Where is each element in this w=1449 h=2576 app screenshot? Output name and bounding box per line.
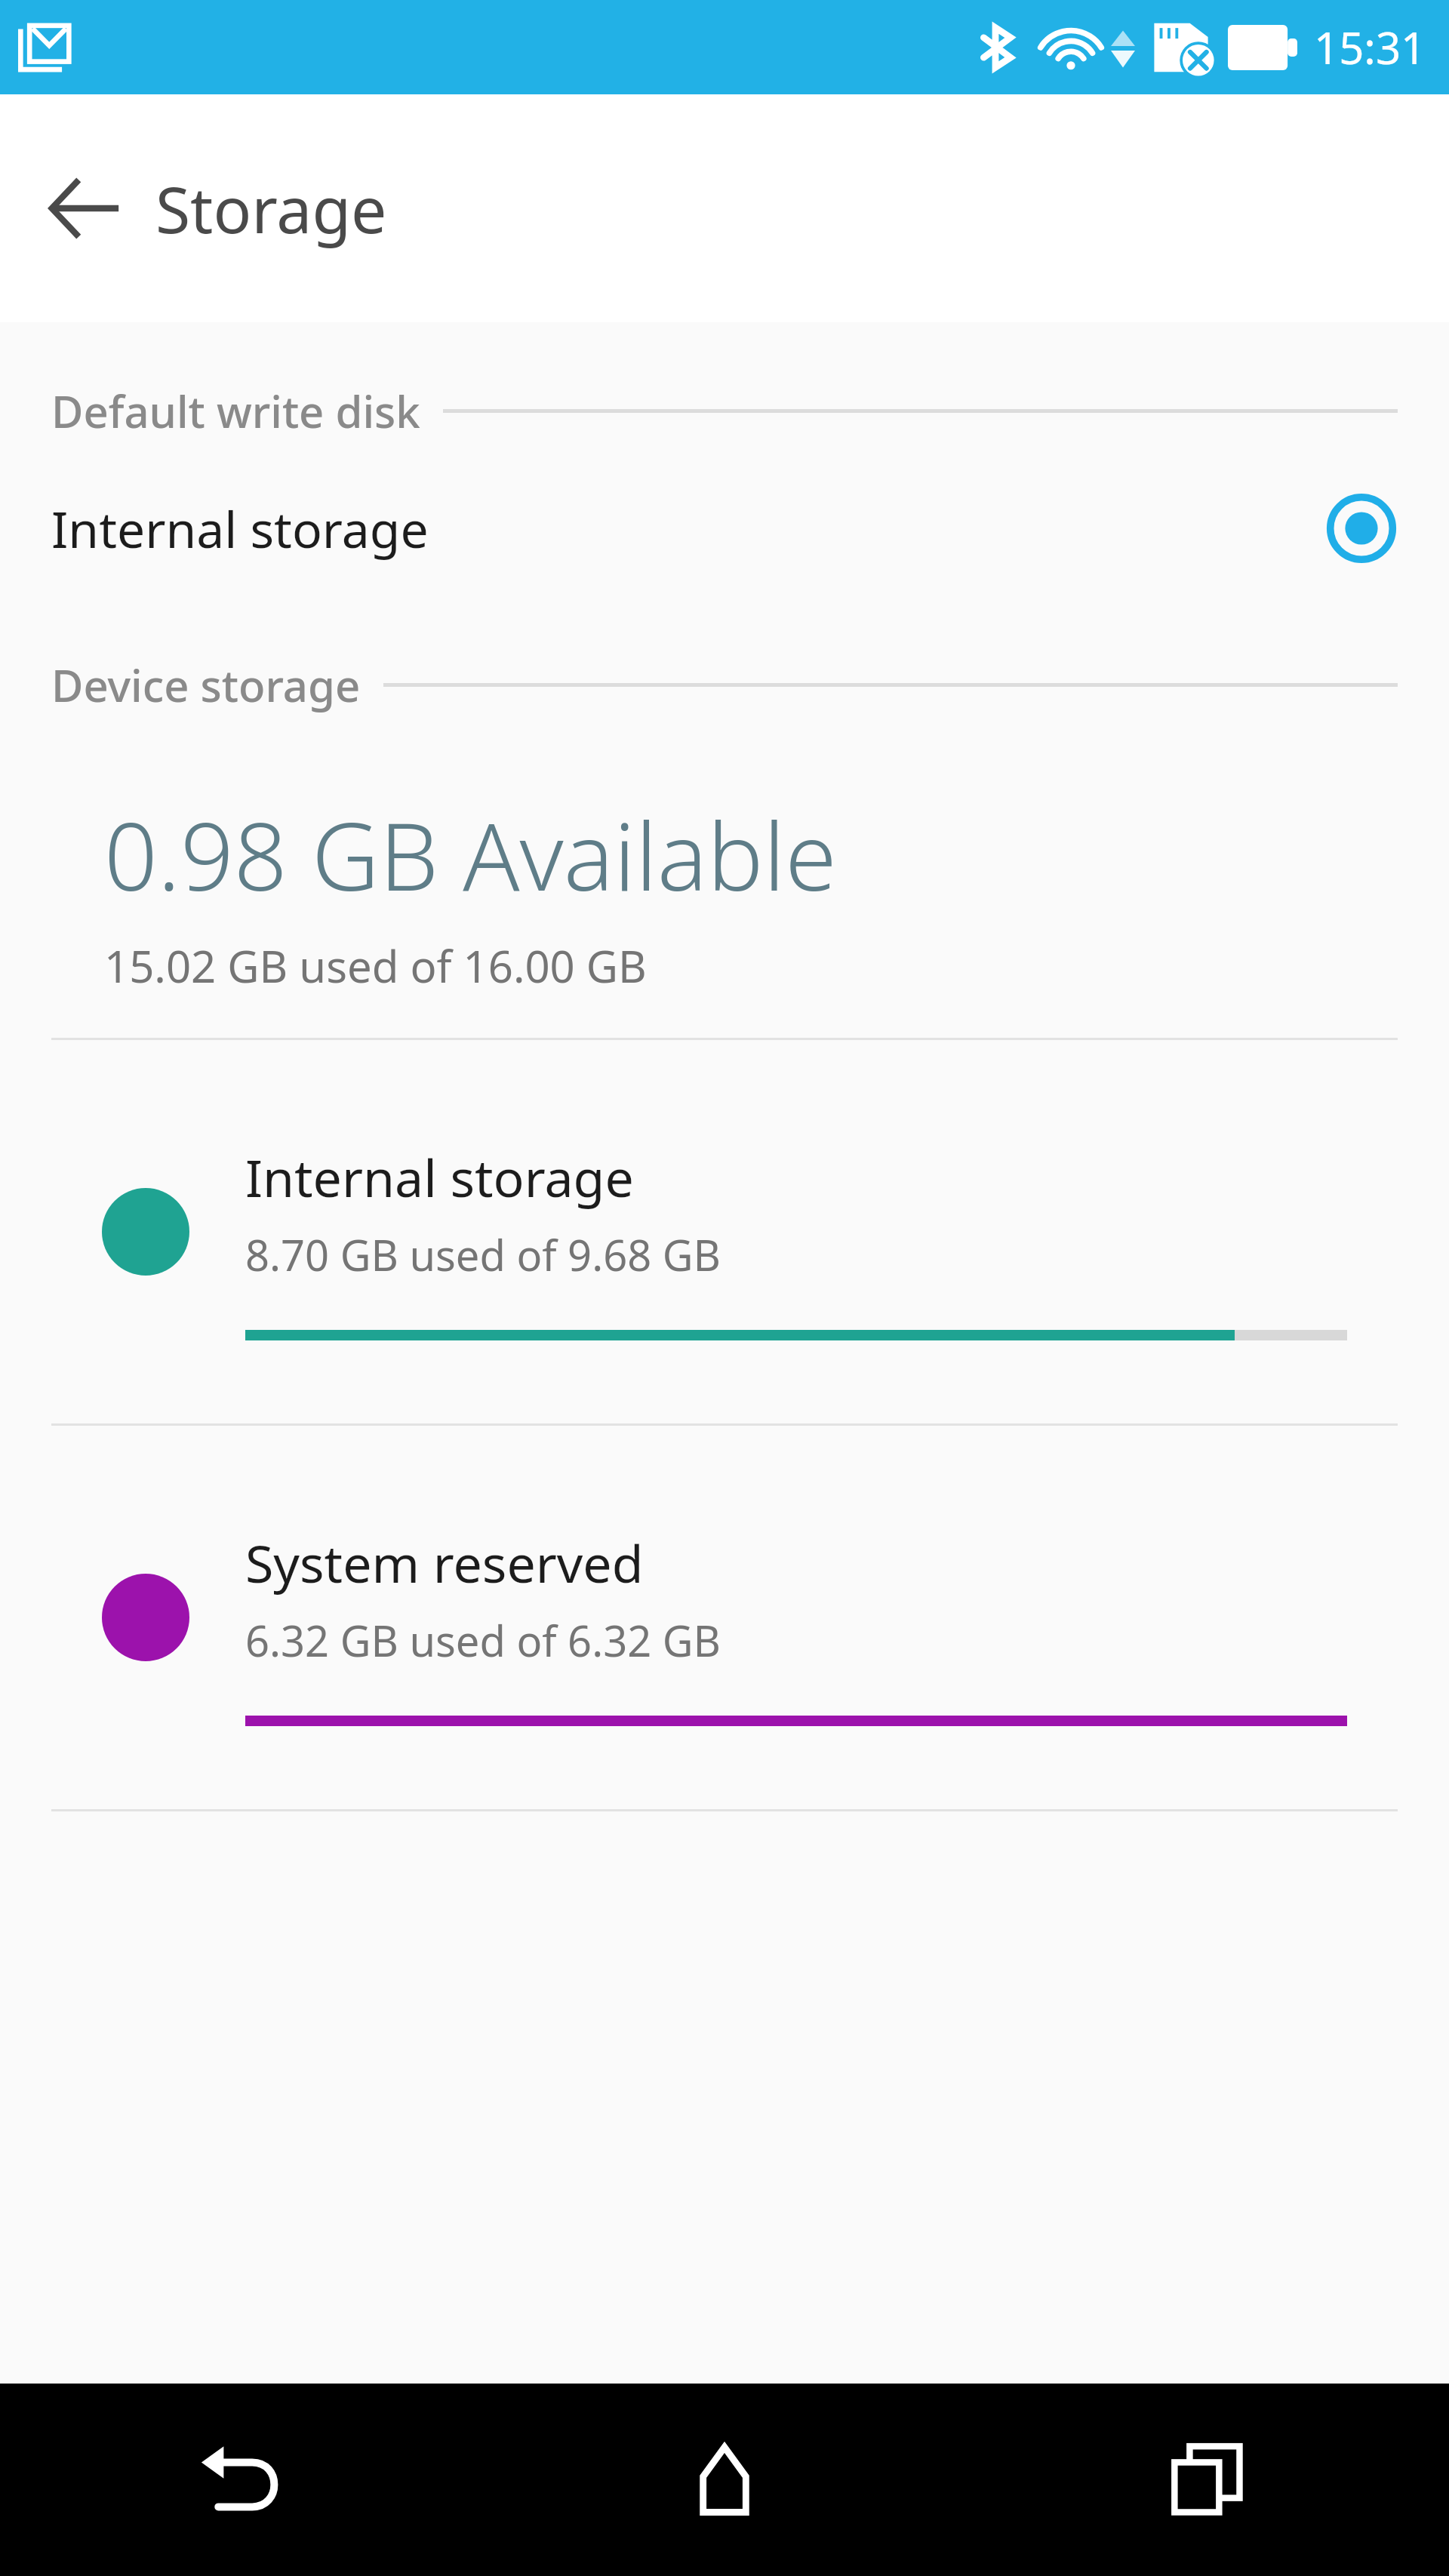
staticText: 8.70 GB used of 9.68 GB [245, 1226, 721, 1283]
button[interactable]: System reserved [0, 1426, 1449, 1809]
button[interactable]: Home [483, 2384, 966, 2576]
button[interactable]: Back [39, 165, 127, 252]
button[interactable]: Internal storage [0, 475, 1449, 581]
staticText: Internal storage [51, 494, 429, 562]
button[interactable]: Back [0, 2384, 483, 2576]
staticText: 15.02 GB used of 16.00 GB [104, 936, 647, 996]
staticText: Internal storage [245, 1142, 634, 1212]
staticText: 15:31 [1314, 17, 1426, 77]
staticText: Storage [155, 165, 387, 251]
staticText: 6.32 GB used of 6.32 GB [245, 1611, 721, 1669]
staticText: System reserved [245, 1528, 644, 1598]
button[interactable]: Internal storage [0, 1040, 1449, 1423]
staticText: 0.98 GB Available [104, 790, 837, 918]
staticText: Default write disk [51, 381, 420, 441]
staticText: Device storage [51, 655, 361, 715]
button[interactable]: Recent apps [966, 2384, 1449, 2576]
